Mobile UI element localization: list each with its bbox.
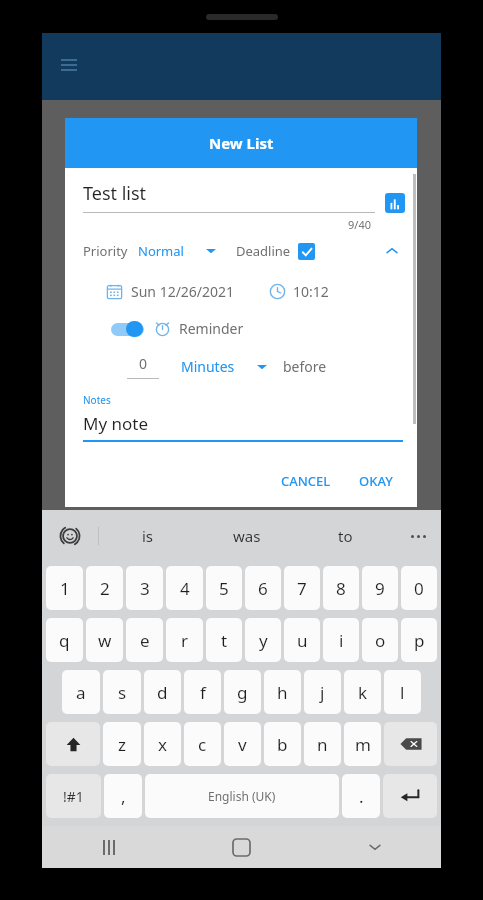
staticText: v (238, 733, 247, 756)
button[interactable]: English (UK) (145, 774, 339, 818)
staticText: to (338, 526, 353, 546)
button[interactable]: Reminder (111, 319, 417, 338)
staticText: e (140, 629, 150, 652)
staticText: OKAY (359, 472, 393, 490)
staticText: j (320, 681, 325, 704)
staticText: d (157, 681, 168, 704)
button[interactable]: 2 (86, 566, 123, 610)
staticText: Priority (83, 242, 128, 260)
button[interactable]: s (103, 670, 141, 714)
button[interactable]: n (304, 722, 341, 766)
button[interactable]: g (224, 670, 261, 714)
button[interactable]: x (144, 722, 181, 766)
button[interactable]: Enter (383, 774, 437, 818)
button[interactable]: k (344, 670, 381, 714)
button[interactable]: 10:12 (269, 282, 329, 301)
staticText: t (221, 629, 228, 652)
staticText: Sun 12/26/2021 (131, 282, 235, 301)
staticText: o (375, 629, 386, 652)
button[interactable]: 3 (126, 566, 163, 610)
staticText: y (259, 629, 268, 652)
staticText: is (142, 526, 154, 546)
staticText: 2 (100, 577, 110, 600)
button[interactable]: 1 (46, 566, 83, 610)
staticText: 9 (375, 577, 385, 600)
button[interactable]: Recent apps (42, 826, 175, 868)
button[interactable]: !#1 (46, 774, 101, 818)
staticText: g (237, 681, 248, 704)
button[interactable]: w (86, 618, 123, 662)
button[interactable]: m (344, 722, 381, 766)
staticText: p (414, 629, 425, 652)
button[interactable]: Hide keyboard (308, 826, 441, 868)
staticText: x (158, 733, 167, 756)
button[interactable]: Shift (46, 722, 100, 766)
staticText: u (297, 629, 308, 652)
button[interactable]: Minutes (181, 357, 267, 376)
button[interactable]: d (144, 670, 181, 714)
button[interactable]: i (323, 618, 359, 662)
staticText: 0 (139, 354, 148, 373)
button[interactable]: Sun 12/26/2021 (106, 282, 235, 301)
button[interactable]: Collapse (381, 240, 403, 262)
button[interactable]: v (224, 722, 261, 766)
staticText: k (358, 681, 368, 704)
button[interactable]: c (184, 722, 221, 766)
button[interactable]: 7 (284, 566, 320, 610)
staticText: n (317, 733, 328, 756)
button[interactable]: q (46, 618, 83, 662)
staticText: q (59, 629, 70, 652)
staticText: Reminder (179, 319, 244, 338)
button[interactable]: 0 (125, 354, 161, 379)
button[interactable]: 5 (206, 566, 242, 610)
button[interactable]: f (184, 670, 221, 714)
button[interactable]: p (401, 618, 437, 662)
staticText: 9/40 (65, 217, 371, 232)
button[interactable]: More suggestions (395, 510, 441, 562)
staticText: 6 (258, 577, 268, 600)
staticText: Minutes (181, 357, 235, 376)
button[interactable]: r (166, 618, 203, 662)
staticText: r (181, 629, 189, 652)
button[interactable]: , (104, 774, 142, 818)
staticText: z (118, 733, 126, 756)
button[interactable]: h (264, 670, 301, 714)
button[interactable]: Statistics (385, 193, 405, 213)
button[interactable]: 4 (166, 566, 203, 610)
button[interactable]: y (245, 618, 281, 662)
button[interactable]: Emoji (42, 510, 98, 562)
button[interactable]: z (103, 722, 141, 766)
staticText: 8 (336, 577, 346, 600)
staticText: Test list (83, 181, 147, 206)
button[interactable]: 6 (245, 566, 281, 610)
button[interactable]: is (99, 510, 197, 562)
button[interactable]: Home (175, 826, 308, 868)
staticText: f (200, 681, 206, 704)
staticText: Normal (138, 242, 184, 260)
button[interactable]: a (62, 670, 100, 714)
button[interactable]: j (304, 670, 341, 714)
button[interactable]: CANCEL (271, 465, 341, 497)
button[interactable]: o (362, 618, 398, 662)
button[interactable]: l (384, 670, 421, 714)
button[interactable]: Backspace (384, 722, 437, 766)
button[interactable]: t (206, 618, 242, 662)
staticText: 5 (219, 577, 229, 600)
button[interactable]: 8 (323, 566, 359, 610)
staticText: , (121, 785, 126, 808)
button[interactable]: u (284, 618, 320, 662)
button[interactable]: Deadline enabled (298, 243, 315, 260)
button[interactable]: to (296, 510, 395, 562)
staticText: CANCEL (281, 472, 331, 490)
button[interactable]: Normal (138, 242, 216, 260)
button[interactable]: e (126, 618, 163, 662)
button[interactable]: . (342, 774, 380, 818)
button[interactable]: Menu (61, 59, 77, 75)
button[interactable]: b (264, 722, 301, 766)
staticText: . (359, 785, 364, 808)
button[interactable]: 0 (401, 566, 437, 610)
staticText: English (UK) (208, 788, 276, 804)
button[interactable]: 9 (362, 566, 398, 610)
button[interactable]: was (197, 510, 296, 562)
button[interactable]: OKAY (349, 465, 403, 497)
